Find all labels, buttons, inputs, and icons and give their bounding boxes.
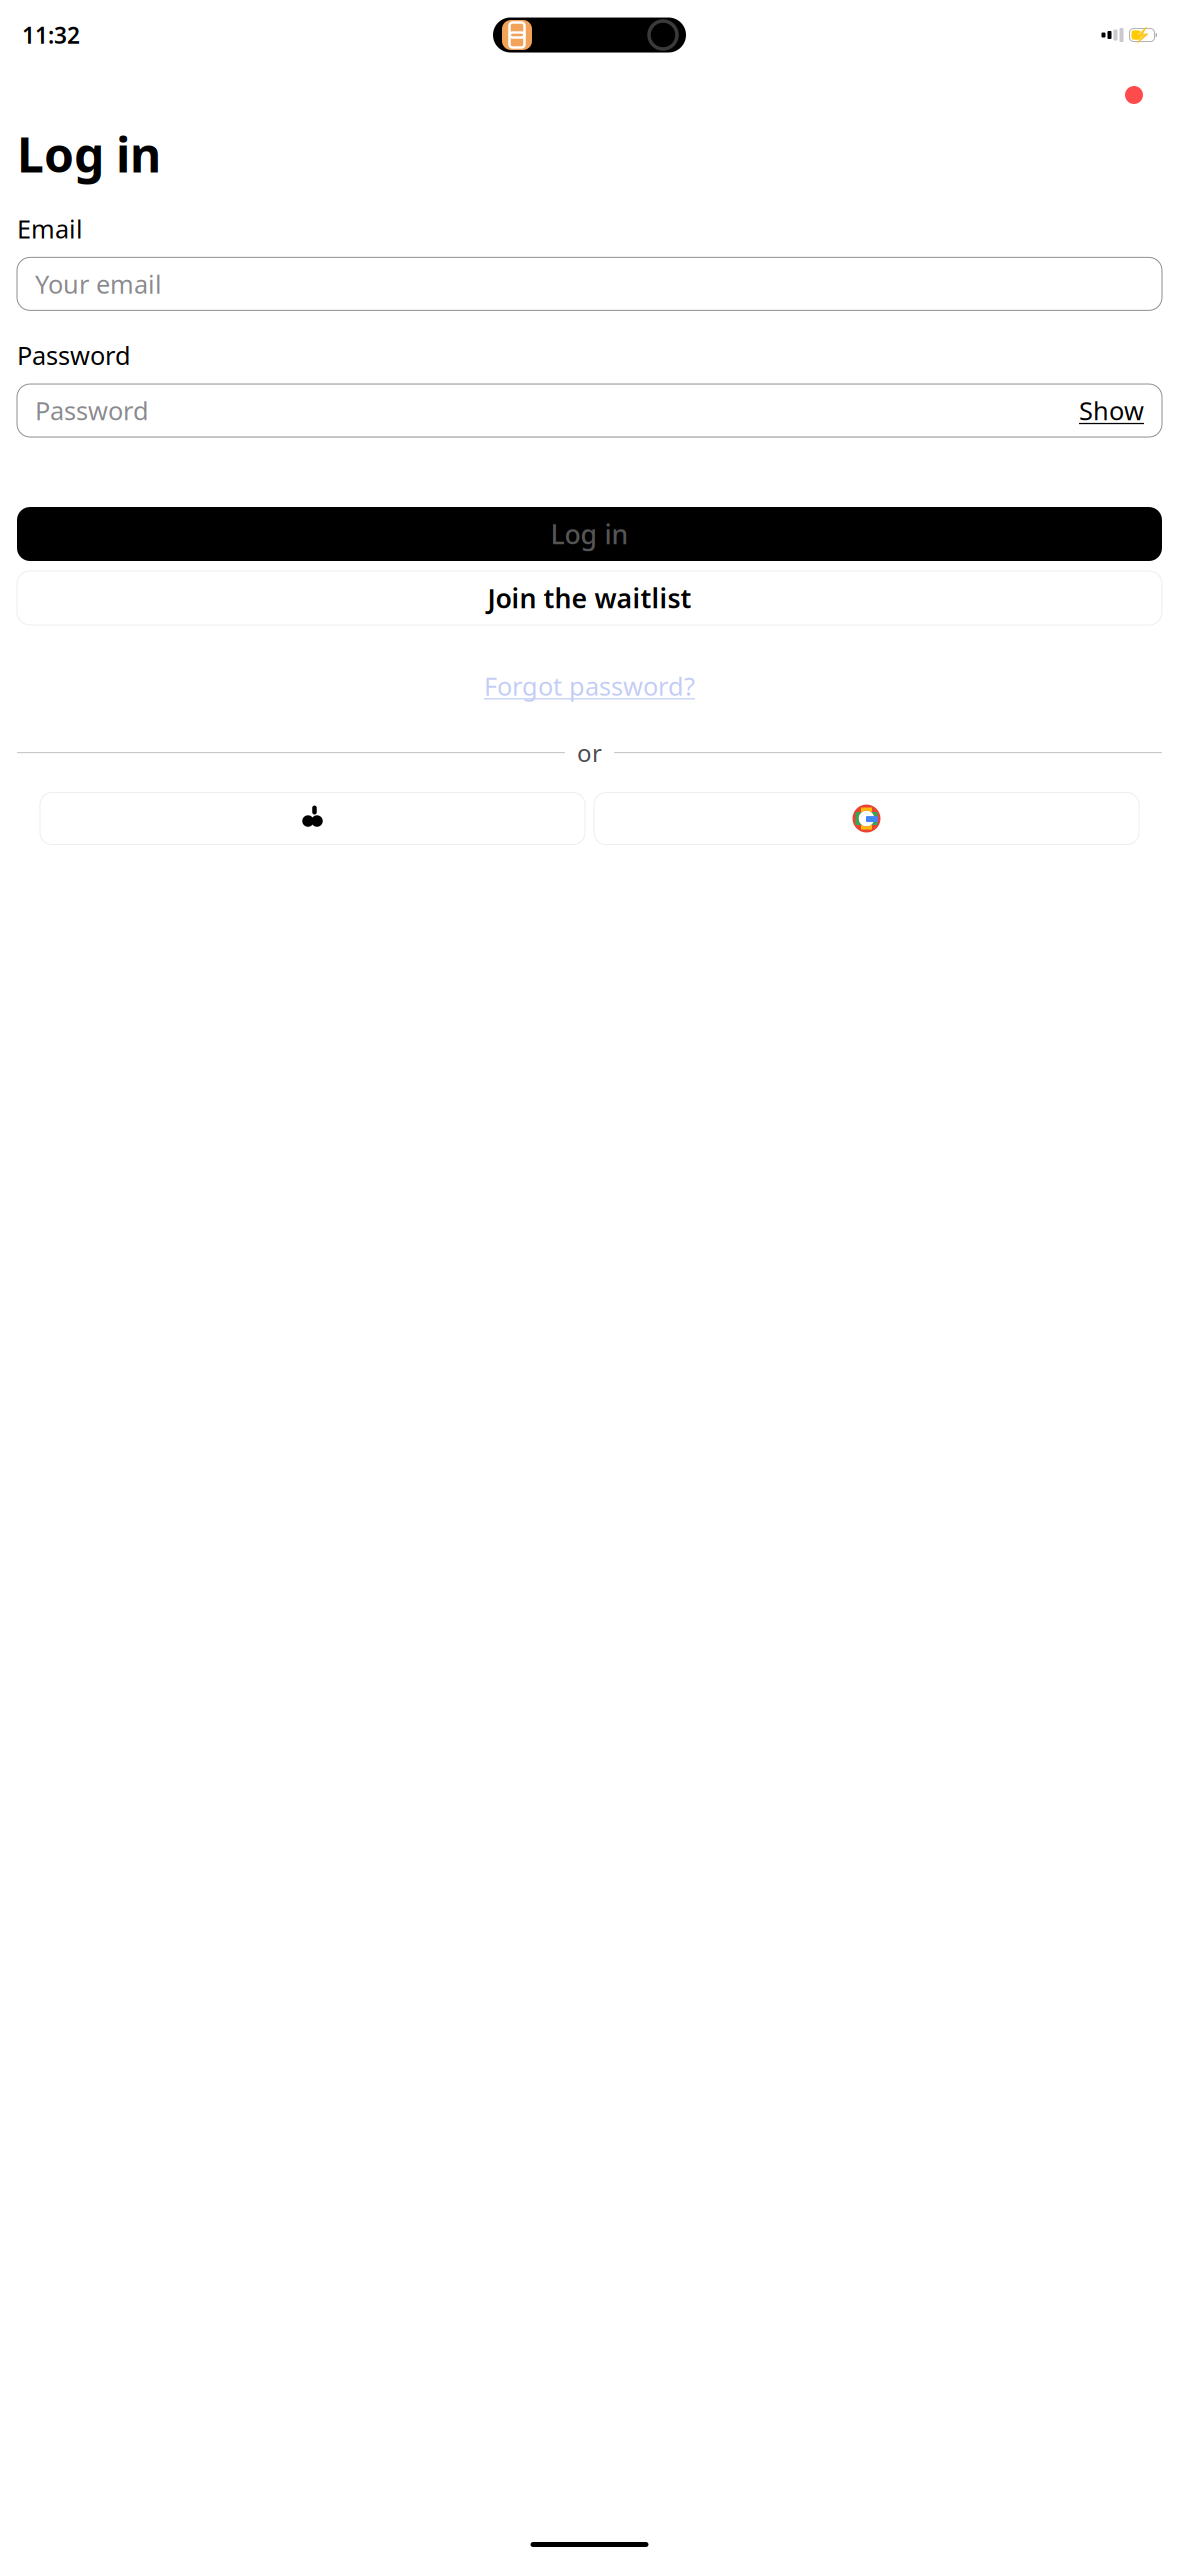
button[interactable]: Forgot password? xyxy=(17,661,1162,711)
button[interactable]: Log in xyxy=(17,507,1162,561)
staticText: Email xyxy=(17,212,83,245)
button[interactable]: Password xyxy=(17,384,1162,437)
staticText: ⚡ xyxy=(1133,27,1151,43)
staticText: Join the waitlist xyxy=(487,580,691,616)
staticText: Log in xyxy=(17,122,161,186)
staticText: Forgot password? xyxy=(484,669,695,703)
staticText: Password xyxy=(35,394,149,427)
staticText: or xyxy=(577,737,602,769)
staticText: Show xyxy=(1079,394,1144,427)
button[interactable]: Your email xyxy=(17,257,1162,310)
staticText: 11:32 xyxy=(22,20,80,50)
staticText: Your email xyxy=(35,267,162,301)
staticText: Log in xyxy=(550,516,628,552)
button[interactable]: Join the waitlist xyxy=(17,571,1162,625)
staticText: Password xyxy=(17,338,131,372)
button[interactable]: Continue with Apple xyxy=(40,792,585,844)
button[interactable]: Continue with Google xyxy=(594,792,1139,844)
